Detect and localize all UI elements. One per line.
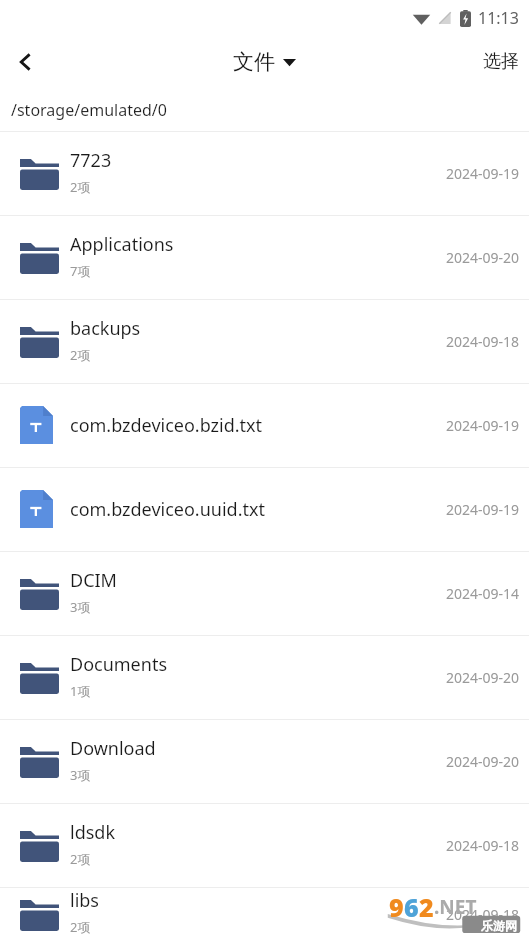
staticText: 2024-09-18 — [419, 905, 519, 924]
staticText: 2024-09-18 — [419, 332, 519, 351]
staticText: 乐游网 — [481, 918, 517, 933]
staticText: Applications — [70, 232, 174, 257]
staticText: 11:13 — [478, 7, 519, 29]
staticText: 2024-09-20 — [419, 752, 519, 771]
staticText: 1项 — [70, 682, 91, 700]
staticText: 2024-09-19 — [419, 500, 519, 519]
staticText: 2项 — [70, 346, 91, 364]
staticText: 7项 — [70, 262, 91, 280]
staticText: Documents — [70, 652, 168, 677]
staticText: Download — [70, 736, 156, 761]
staticText: 文件 — [233, 49, 275, 75]
staticText: com.bzdeviceo.bzid.txt — [70, 413, 263, 438]
staticText: 2024-09-18 — [419, 836, 519, 855]
button[interactable]: DCIM — [0, 552, 529, 635]
button[interactable]: 选择 — [473, 42, 529, 81]
staticText: 3项 — [70, 598, 91, 616]
staticText: 2024-09-20 — [419, 668, 519, 687]
staticText: 6 — [404, 890, 419, 924]
button[interactable]: libs — [0, 888, 529, 940]
staticText: backups — [70, 316, 141, 341]
staticText: 2024-09-20 — [419, 248, 519, 267]
staticText: 2项 — [70, 850, 91, 868]
staticText: 2项 — [70, 178, 91, 196]
button[interactable]: Download — [0, 720, 529, 803]
button[interactable]: com.bzdeviceo.bzid.txt — [0, 384, 529, 467]
staticText: 2024-09-19 — [419, 416, 519, 435]
button[interactable]: Applications — [0, 216, 529, 299]
staticText: libs — [70, 888, 99, 913]
button[interactable]: com.bzdeviceo.uuid.txt — [0, 468, 529, 551]
staticText: 2 — [419, 890, 434, 924]
staticText: 2项 — [70, 918, 91, 936]
button[interactable]: Documents — [0, 636, 529, 719]
staticText: 选择 — [483, 50, 519, 73]
staticText: DCIM — [70, 568, 117, 593]
staticText: com.bzdeviceo.uuid.txt — [70, 497, 265, 522]
button[interactable]: 文件 — [233, 49, 296, 75]
staticText: 2024-09-14 — [419, 584, 519, 603]
button[interactable]: Back — [0, 36, 52, 88]
staticText: 3项 — [70, 766, 91, 784]
button[interactable]: 7723 — [0, 132, 529, 215]
staticText: ldsdk — [70, 820, 116, 845]
staticText: 2024-09-19 — [419, 164, 519, 183]
staticText: /storage/emulated/0 — [11, 99, 167, 121]
staticText: .NET — [434, 894, 477, 920]
button[interactable]: backups — [0, 300, 529, 383]
staticText: 9 — [389, 890, 404, 924]
staticText: 7723 — [70, 148, 112, 173]
button[interactable]: ldsdk — [0, 804, 529, 887]
